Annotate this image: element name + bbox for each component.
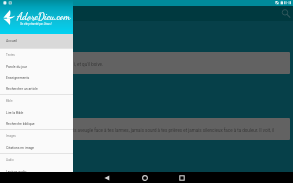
button[interactable]: Enseignements [0,72,73,83]
staticText: Audio [6,158,14,162]
staticText: Recherche biblique [6,122,35,126]
staticText: Textes [6,53,15,57]
button[interactable]: Recents [177,173,187,183]
button[interactable]: Back [102,173,112,183]
staticText: Lire la Bible [6,111,24,115]
button[interactable]: i, et qu'il boive. [3,52,290,74]
button[interactable]: Lire la Bible [0,107,73,118]
button[interactable]: Citations en image [0,142,73,153]
staticText: i, et qu'il boive. [74,62,104,67]
staticText: Quand tu souffres, Dieu n'est jamais ave… [5,128,287,133]
staticText: Un site présenté par Jésus ! [20,23,52,26]
staticText: Citations en image [6,146,35,150]
button[interactable]: Accueil [0,34,73,48]
button[interactable]: Home [140,173,150,183]
staticText: Parole du jour [6,65,27,69]
button[interactable]: Recherche biblique [0,118,73,129]
button[interactable]: Quand tu souffres, Dieu n'est jamais ave… [3,118,290,140]
staticText: Enseignements [6,76,30,80]
staticText: AdoreDieu.com [17,11,71,23]
button[interactable]: Lecture audio [0,166,73,177]
staticText: Lecture audio [6,170,27,174]
staticText: Bible [6,99,13,103]
button[interactable]: Rechercher un article [0,83,73,94]
button[interactable]: Parole du jour [0,61,73,72]
staticText: Images [6,134,16,138]
staticText: Rechercher un article [6,87,38,91]
button[interactable]: Search [279,7,292,20]
staticText: Accueil [6,39,18,43]
